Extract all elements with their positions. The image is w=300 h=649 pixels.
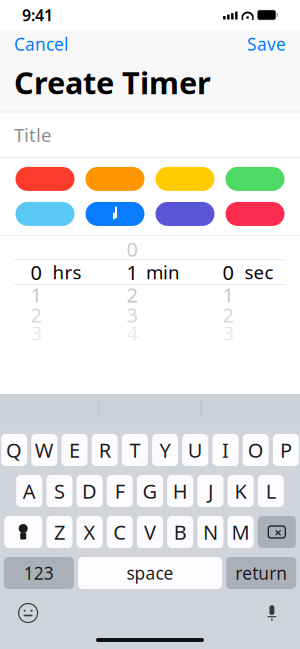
button[interactable]: 123 xyxy=(4,557,74,589)
staticText: Y xyxy=(160,437,171,463)
staticText: O xyxy=(248,437,264,463)
staticText: 1 xyxy=(222,281,233,308)
button[interactable]: Delete xyxy=(258,516,296,548)
staticText: C xyxy=(113,519,126,545)
staticText: 3 xyxy=(222,319,233,346)
button[interactable]: Shift xyxy=(4,516,42,548)
staticText: 2 xyxy=(30,301,41,328)
button[interactable]: Emoji xyxy=(11,599,45,627)
staticText: S xyxy=(54,478,65,504)
staticText: 3 xyxy=(30,319,41,346)
button[interactable]: Z xyxy=(46,516,72,548)
staticText: V xyxy=(144,519,156,545)
button[interactable]: D xyxy=(77,475,103,507)
button[interactable]: F xyxy=(107,475,133,507)
button[interactable]: I xyxy=(212,434,238,466)
staticText: 0 xyxy=(30,259,41,285)
button[interactable]: Choose colour xyxy=(15,202,74,226)
button[interactable]: J xyxy=(197,475,223,507)
staticText: U xyxy=(188,437,203,463)
button[interactable]: V xyxy=(137,516,163,548)
button[interactable]: Choose colour xyxy=(225,167,284,191)
staticText: L xyxy=(266,478,276,504)
staticText: 123 xyxy=(24,561,54,584)
button[interactable]: Choose colour xyxy=(85,167,144,191)
staticText: A xyxy=(23,478,36,504)
staticText: Create Timer xyxy=(14,62,211,103)
staticText: T xyxy=(129,437,140,463)
staticText: return xyxy=(235,561,287,584)
staticText: Title xyxy=(14,122,52,147)
button[interactable]: H xyxy=(167,475,193,507)
button[interactable]: Save xyxy=(233,30,300,58)
button[interactable]: M xyxy=(228,516,254,548)
button[interactable]: A xyxy=(16,475,42,507)
staticText: H xyxy=(173,478,188,504)
button[interactable]: Colour selected xyxy=(85,202,144,226)
staticText: D xyxy=(82,478,97,504)
staticText: 0 xyxy=(126,236,137,262)
button[interactable]: K xyxy=(228,475,254,507)
staticText: 1 xyxy=(126,259,137,285)
button[interactable]: E xyxy=(61,434,87,466)
staticText: Cancel xyxy=(14,32,68,55)
staticText: 9:41 xyxy=(22,4,53,26)
button[interactable]: G xyxy=(137,475,163,507)
staticText: W xyxy=(35,437,54,463)
staticText: 2 xyxy=(126,281,137,308)
button[interactable]: Choose colour xyxy=(15,167,74,191)
staticText: I xyxy=(222,437,229,463)
staticText: F xyxy=(115,478,125,504)
staticText: R xyxy=(99,437,111,463)
staticText: min xyxy=(146,260,180,284)
button[interactable]: W xyxy=(31,434,57,466)
staticText: Save xyxy=(247,32,286,55)
staticText: 0 xyxy=(222,259,233,285)
button[interactable]: P xyxy=(273,434,299,466)
button[interactable]: Y xyxy=(152,434,178,466)
button[interactable]: Choose colour xyxy=(155,202,214,226)
button[interactable]: T xyxy=(122,434,148,466)
staticText: 4 xyxy=(126,319,137,346)
staticText: E xyxy=(69,437,80,463)
button[interactable]: S xyxy=(46,475,72,507)
staticText: × xyxy=(274,523,282,541)
button[interactable]: X xyxy=(77,516,103,548)
staticText: 1 xyxy=(30,281,41,308)
staticText: Q xyxy=(6,437,22,463)
staticText: G xyxy=(142,478,157,504)
button[interactable]: C xyxy=(107,516,133,548)
button[interactable]: O xyxy=(243,434,269,466)
staticText: P xyxy=(280,437,292,463)
button[interactable]: Cancel xyxy=(0,30,82,58)
button[interactable]: L xyxy=(258,475,284,507)
button[interactable]: B xyxy=(167,516,193,548)
staticText: Z xyxy=(54,519,65,545)
staticText: K xyxy=(235,478,247,504)
button[interactable]: R xyxy=(92,434,118,466)
staticText: M xyxy=(232,519,250,545)
button[interactable]: N xyxy=(197,516,223,548)
button[interactable]: Dictate xyxy=(255,599,289,627)
button[interactable]: Choose colour xyxy=(225,202,284,226)
staticText: 3 xyxy=(126,301,137,328)
button[interactable]: Q xyxy=(1,434,27,466)
button[interactable]: space xyxy=(78,557,222,589)
button[interactable]: return xyxy=(226,557,296,589)
staticText: 2 xyxy=(222,301,233,328)
staticText: J xyxy=(208,478,213,504)
staticText: X xyxy=(84,519,96,545)
button[interactable]: U xyxy=(182,434,208,466)
button[interactable]: Choose colour xyxy=(155,167,214,191)
staticText: hrs xyxy=(52,260,81,284)
staticText: B xyxy=(174,519,187,545)
staticText: space xyxy=(126,561,173,584)
staticText: sec xyxy=(244,260,273,284)
staticText: N xyxy=(203,519,218,545)
